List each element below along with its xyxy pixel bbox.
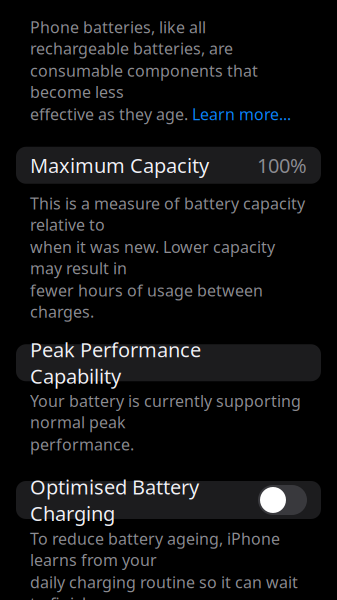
button[interactable]: Optimised Battery Charging	[16, 481, 321, 519]
staticText: To reduce battery ageing, iPhone learns …	[30, 528, 280, 570]
staticText: Phone batteries, like all rechargeable b…	[30, 16, 233, 59]
staticText: performance.	[30, 434, 134, 455]
staticText: consumable components that become less	[30, 60, 258, 102]
staticText: effective as they age.	[30, 103, 188, 125]
staticText: Optimised Battery Charging	[30, 473, 199, 526]
button[interactable]: Peak Performance Capability	[16, 344, 321, 381]
staticText: 100%	[257, 152, 307, 179]
staticText: Maximum Capacity	[30, 152, 209, 179]
staticText: This is a measure of battery capacity re…	[30, 193, 305, 235]
staticText: Your battery is currently supporting nor…	[30, 390, 301, 433]
staticText: when it was new. Lower capacity may resu…	[30, 236, 275, 279]
button[interactable]: Learn more...	[192, 103, 291, 125]
staticText: daily charging routine so it can wait to…	[30, 571, 298, 600]
staticText: Learn more...	[192, 103, 291, 125]
button[interactable]: Maximum Capacity	[16, 147, 321, 184]
staticText: fewer hours of usage between charges.	[30, 280, 263, 322]
staticText: Peak Performance Capability	[30, 336, 201, 389]
